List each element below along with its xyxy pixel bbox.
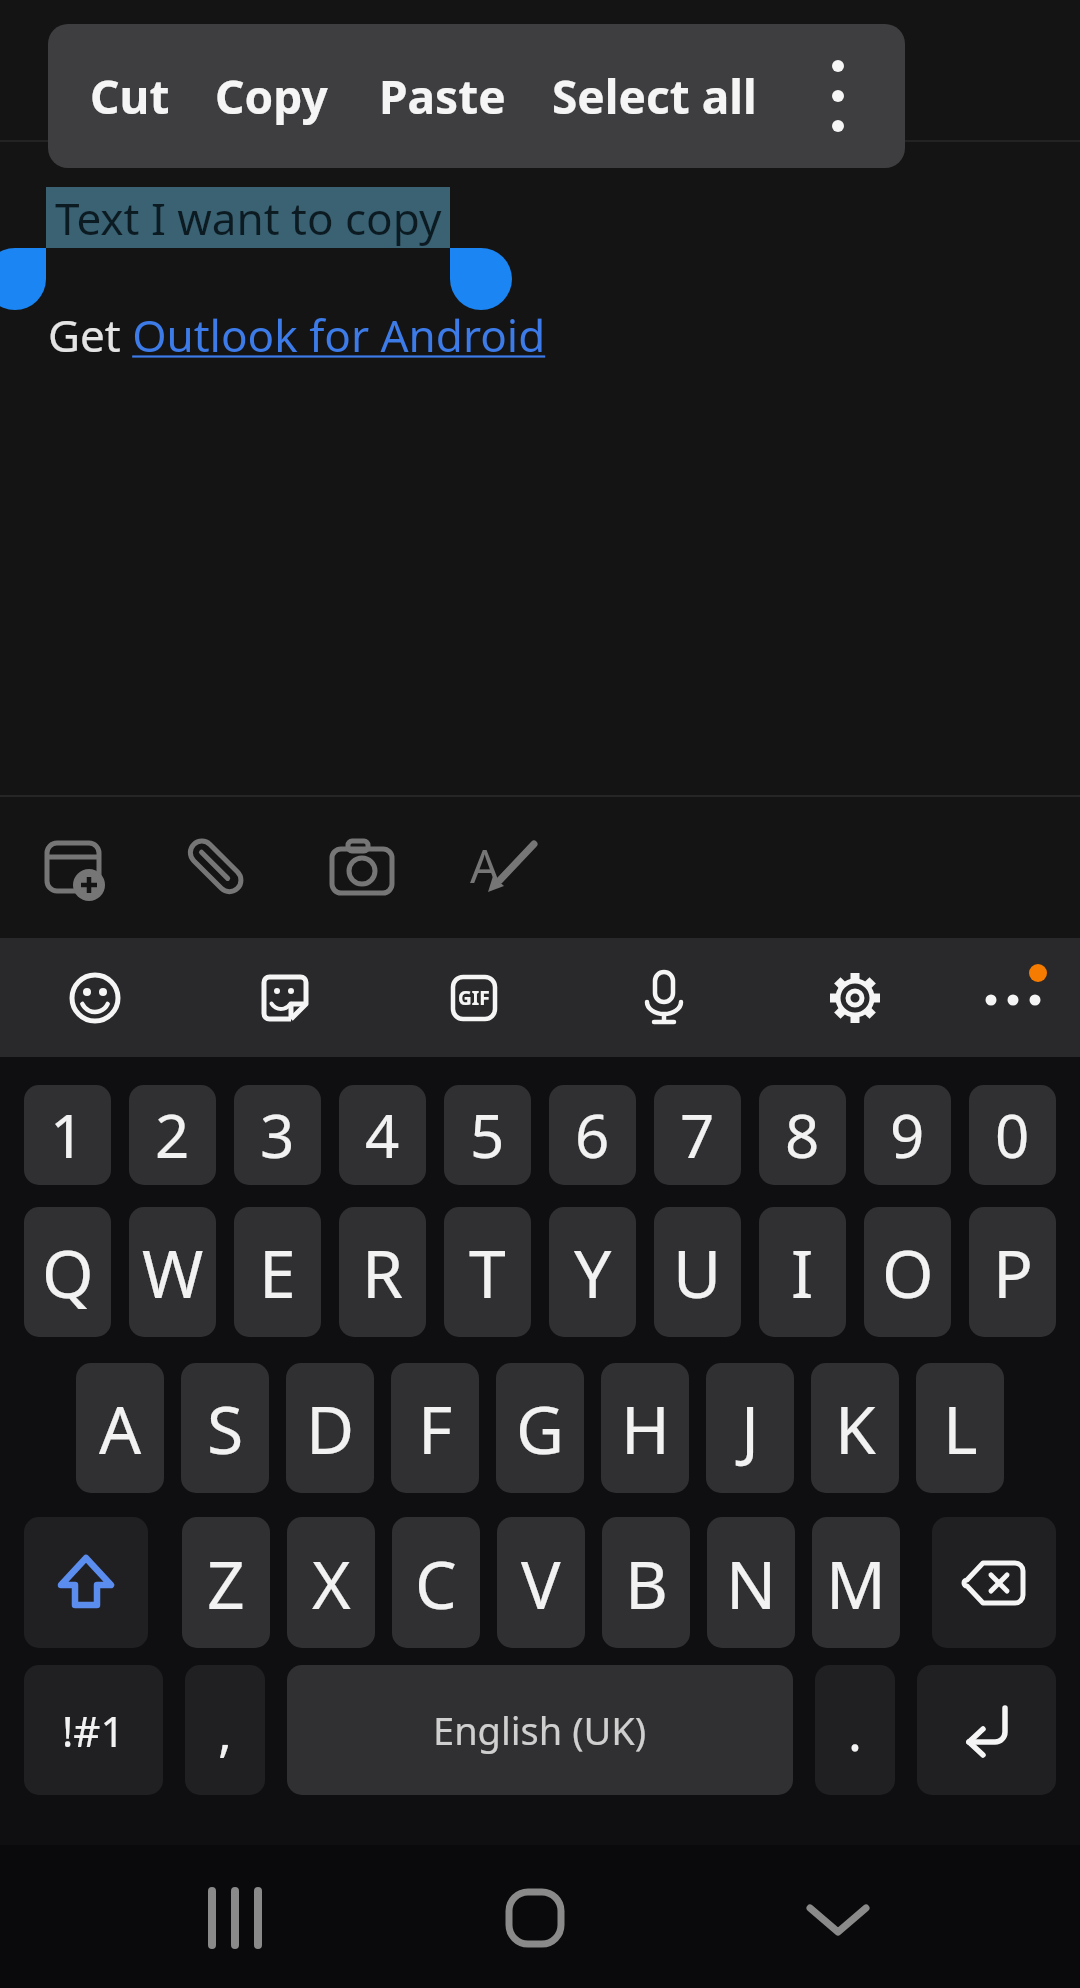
button[interactable] [330, 839, 394, 895]
button[interactable]: 4 [339, 1085, 426, 1185]
staticText: Q [42, 1227, 94, 1317]
button[interactable]: X [287, 1517, 375, 1648]
staticText: W [142, 1227, 204, 1317]
button[interactable]: Y [549, 1207, 636, 1337]
button[interactable] [203, 1885, 263, 1951]
staticText: I [791, 1227, 814, 1317]
button[interactable]: 3 [234, 1085, 321, 1185]
staticText: GIF [458, 985, 490, 1011]
staticText: U [673, 1227, 722, 1317]
button[interactable]: E [234, 1207, 321, 1337]
staticText: M [826, 1538, 886, 1628]
button[interactable]: Paste [379, 65, 506, 128]
button[interactable]: !#1 [24, 1665, 163, 1795]
button[interactable]: 1 [24, 1085, 111, 1185]
button[interactable] [70, 973, 120, 1023]
button[interactable]: F [391, 1363, 479, 1493]
button[interactable]: O [864, 1207, 951, 1337]
staticText: N [726, 1538, 777, 1628]
button[interactable]: I [759, 1207, 846, 1337]
button[interactable]: J [706, 1363, 794, 1493]
button[interactable] [932, 1517, 1056, 1648]
staticText: Z [207, 1538, 245, 1628]
button[interactable] [917, 1665, 1056, 1795]
button[interactable] [975, 960, 1055, 1020]
button[interactable]: 9 [864, 1085, 951, 1185]
button[interactable]: Copy [215, 65, 328, 128]
staticText: 7 [680, 1094, 715, 1176]
staticText: , [218, 1695, 232, 1766]
staticText: 8 [785, 1094, 820, 1176]
button[interactable]: B [602, 1517, 690, 1648]
button[interactable]: G [496, 1363, 584, 1493]
staticText: 1 [50, 1094, 85, 1176]
button[interactable] [484, 834, 544, 894]
button[interactable] [44, 837, 108, 901]
staticText: 2 [155, 1094, 190, 1176]
button[interactable]: D [286, 1363, 374, 1493]
staticText: V [521, 1538, 561, 1628]
button[interactable]: 7 [654, 1085, 741, 1185]
button[interactable]: V [497, 1517, 585, 1648]
button[interactable] [827, 970, 883, 1026]
staticText: L [943, 1383, 978, 1473]
staticText: R [362, 1227, 404, 1317]
button[interactable]: GIF [451, 975, 497, 1021]
staticText: T [469, 1227, 506, 1317]
staticText: P [993, 1227, 1033, 1317]
staticText: Y [574, 1227, 612, 1317]
button[interactable]: , [185, 1665, 265, 1795]
button[interactable]: H [601, 1363, 689, 1493]
staticText: 4 [365, 1094, 400, 1176]
button[interactable] [806, 1900, 870, 1940]
staticText: F [418, 1383, 453, 1473]
button[interactable] [181, 831, 251, 901]
staticText: 3 [260, 1094, 295, 1176]
button[interactable]: M [812, 1517, 900, 1648]
staticText: 5 [470, 1094, 505, 1176]
staticText: A [470, 834, 500, 897]
button[interactable]: C [392, 1517, 480, 1648]
staticText: . [848, 1695, 862, 1766]
button[interactable]: 6 [549, 1085, 636, 1185]
button[interactable]: 0 [969, 1085, 1056, 1185]
staticText: English (UK) [433, 1704, 647, 1756]
staticText: C [415, 1538, 457, 1628]
button[interactable]: 5 [444, 1085, 531, 1185]
button[interactable] [24, 1517, 148, 1648]
button[interactable]: T [444, 1207, 531, 1337]
staticText: G [516, 1383, 565, 1473]
button[interactable]: English (UK) [287, 1665, 793, 1795]
button[interactable]: . [815, 1665, 895, 1795]
staticText: K [835, 1383, 876, 1473]
staticText: !#1 [62, 1702, 125, 1759]
staticText: B [625, 1538, 668, 1628]
button[interactable]: S [181, 1363, 269, 1493]
button[interactable]: U [654, 1207, 741, 1337]
staticText: S [207, 1383, 244, 1473]
button[interactable]: N [707, 1517, 795, 1648]
button[interactable]: P [969, 1207, 1056, 1337]
staticText: X [312, 1538, 351, 1628]
button[interactable]: Cut [90, 65, 170, 128]
button[interactable]: R [339, 1207, 426, 1337]
button[interactable]: Z [182, 1517, 270, 1648]
staticText: H [621, 1383, 670, 1473]
button[interactable] [640, 970, 688, 1026]
button[interactable]: Get Outlook for Android [48, 305, 546, 365]
button[interactable]: 8 [759, 1085, 846, 1185]
button[interactable]: Q [24, 1207, 111, 1337]
staticText: D [306, 1383, 355, 1473]
staticText: A [99, 1383, 142, 1473]
button[interactable]: K [811, 1363, 899, 1493]
button[interactable] [823, 41, 853, 151]
staticText: 9 [890, 1094, 925, 1176]
button[interactable] [261, 974, 309, 1022]
button[interactable]: A [76, 1363, 164, 1493]
staticText: 6 [575, 1094, 610, 1176]
button[interactable]: L [916, 1363, 1004, 1493]
button[interactable]: Select all [552, 65, 757, 128]
button[interactable]: W [129, 1207, 216, 1337]
button[interactable] [505, 1888, 565, 1948]
button[interactable]: 2 [129, 1085, 216, 1185]
